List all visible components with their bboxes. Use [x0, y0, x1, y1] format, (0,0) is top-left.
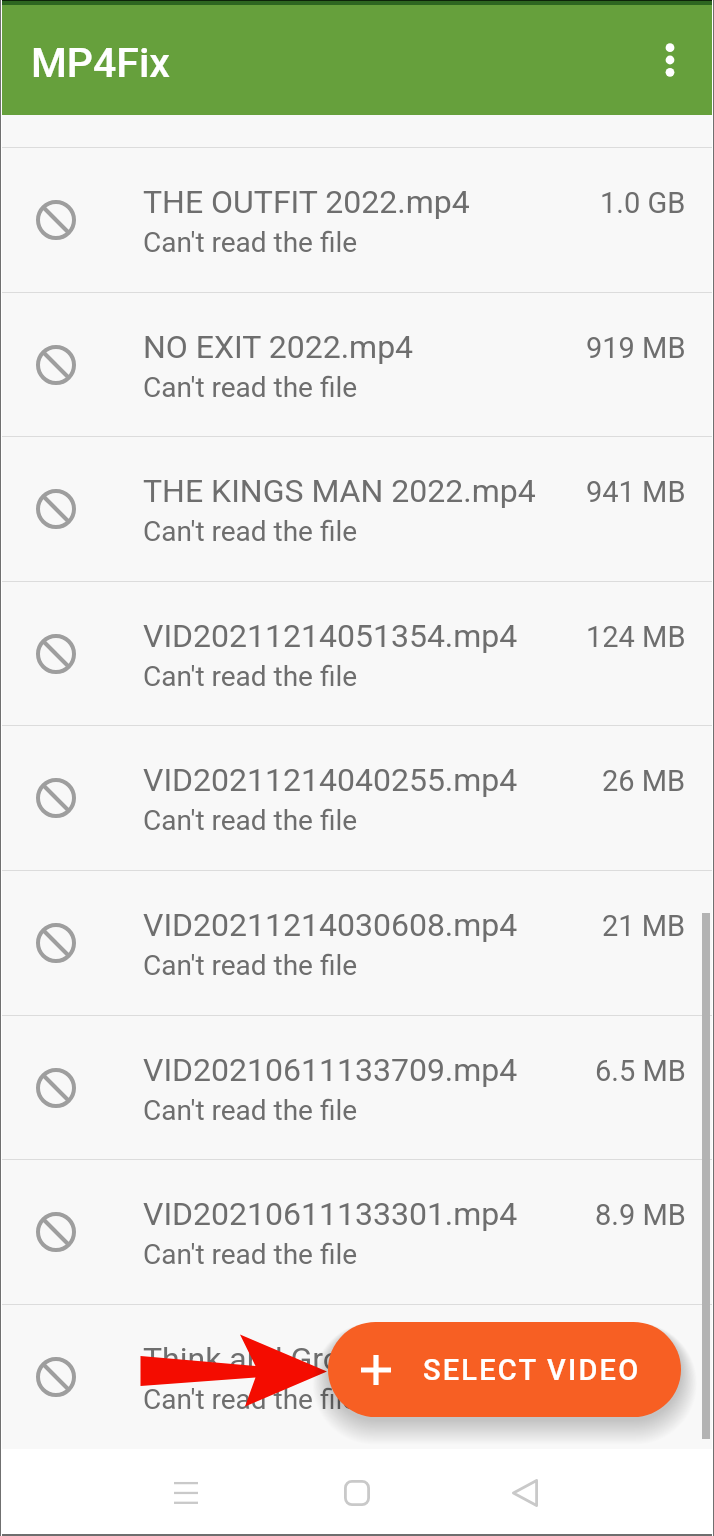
staticText: THE OUTFIT 2022.mp4 — [143, 183, 470, 221]
staticText: Think and Grow Rich.mp4 — [143, 1340, 508, 1378]
staticText: Can't read the file — [143, 949, 358, 982]
staticText: 8.9 MB — [595, 1198, 686, 1232]
staticText: 26 MB — [602, 764, 686, 798]
staticText: Can't read the file — [143, 1383, 358, 1416]
staticText: Can't read the file — [143, 1094, 358, 1127]
button[interactable]: Back — [465, 1449, 585, 1536]
button[interactable]: THE KINGS MAN 2022.mp4 — [0, 436, 714, 581]
button[interactable]: VID20211214051354.mp4 — [0, 581, 714, 726]
staticText: MP4Fix — [31, 39, 170, 87]
staticText: VID20211214040255.mp4 — [143, 761, 518, 799]
button[interactable]: SELECT VIDEO — [328, 1322, 681, 1417]
button[interactable]: VID20211214040255.mp4 — [0, 725, 714, 870]
staticText: Can't read the file — [143, 371, 358, 404]
button[interactable]: NO EXIT 2022.mp4 — [0, 292, 714, 437]
staticText: Can't read the file — [143, 660, 358, 693]
button[interactable]: VID20210611133301.mp4 — [0, 1159, 714, 1304]
staticText: VID20210611133709.mp4 — [143, 1051, 518, 1089]
staticText: 919 MB — [586, 331, 686, 365]
button[interactable]: VID20210611133709.mp4 — [0, 1015, 714, 1160]
button[interactable]: VID20211214030608.mp4 — [0, 870, 714, 1015]
staticText: THE KINGS MAN 2022.mp4 — [143, 472, 536, 510]
staticText: Can't read the file — [143, 226, 358, 259]
staticText: Can't read the file — [143, 804, 358, 837]
staticText: Can't read the file — [143, 515, 358, 548]
staticText: 1.0 GB — [600, 186, 686, 220]
staticText: Can't read the file — [143, 1238, 358, 1271]
staticText: NO EXIT 2022.mp4 — [143, 328, 414, 366]
staticText: VID20210611133301.mp4 — [143, 1195, 518, 1233]
button[interactable]: THE OUTFIT 2022.mp4 — [0, 147, 714, 292]
button[interactable]: Think and Grow Rich.mp4 — [0, 1304, 714, 1449]
staticText: 124 MB — [586, 620, 686, 654]
button[interactable]: More options — [626, 5, 714, 115]
staticText: 21 MB — [602, 909, 686, 943]
staticText: 6.5 MB — [595, 1054, 686, 1088]
staticText: 941 MB — [586, 475, 686, 509]
staticText: VID20211214030608.mp4 — [143, 906, 518, 944]
button[interactable]: Home — [297, 1449, 417, 1536]
staticText: VID20211214051354.mp4 — [143, 617, 518, 655]
staticText: SELECT VIDEO — [423, 1353, 641, 1387]
button[interactable]: Recents — [126, 1449, 246, 1536]
